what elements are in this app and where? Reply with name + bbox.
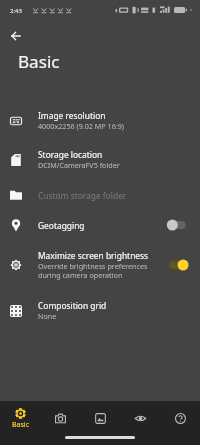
button[interactable]: On [167,259,188,271]
staticText: 4000x2256 (9.02 MP 16:9) [38,121,124,131]
button[interactable]: Help [160,401,200,445]
staticText: Storage location [38,149,103,160]
staticText: Basic [12,420,29,430]
button[interactable]: Gallery [80,401,120,445]
staticText: Image resolution [38,110,106,121]
staticText: Maximize screen brightness [38,250,149,261]
button[interactable]: Back [4,24,28,48]
staticText: Override brightness preferences during c… [38,261,148,280]
button[interactable]: Preview [120,401,160,445]
staticText: None [38,311,57,321]
staticText: Geotagging [38,220,85,231]
button[interactable]: Camera [40,401,80,445]
staticText: Basic [18,50,60,73]
button[interactable]: Off [167,219,188,231]
button[interactable]: Image resolution [0,101,200,140]
staticText: DCIM/CameraFV5 folder [38,160,120,170]
button[interactable]: Storage location [0,140,200,179]
button[interactable]: Composition grid [0,291,200,330]
button[interactable]: Basic settings [0,401,40,445]
button[interactable]: Custom storage folder [0,180,200,210]
button[interactable]: Maximize screen brightness [0,240,200,290]
staticText: 2:43 [10,7,22,15]
staticText: Composition grid [38,300,107,311]
button[interactable]: Geotagging [0,210,200,240]
staticText: Custom storage folder [38,190,127,201]
